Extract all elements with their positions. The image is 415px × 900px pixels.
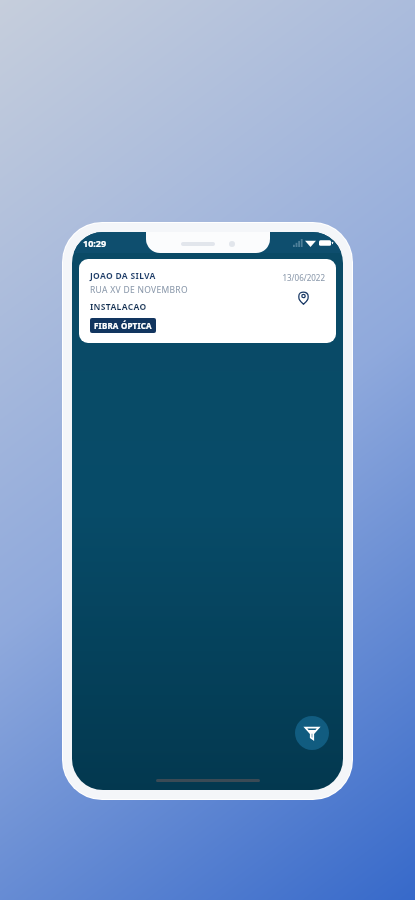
staticText: FIBRA ÓPTICA xyxy=(94,320,152,331)
staticText: 13/06/2022 xyxy=(282,272,325,283)
staticText: JOAO DA SILVA xyxy=(90,270,156,282)
button[interactable]: JOAO DA SILVA xyxy=(79,259,336,343)
staticText: RUA XV DE NOVEMBRO xyxy=(90,284,188,296)
staticText: INSTALACAO xyxy=(90,301,147,313)
button[interactable]: Filter xyxy=(295,716,329,750)
staticText: 10:29 xyxy=(83,237,107,249)
button[interactable]: FIBRA ÓPTICA xyxy=(94,320,152,331)
button[interactable]: Location xyxy=(295,289,312,306)
